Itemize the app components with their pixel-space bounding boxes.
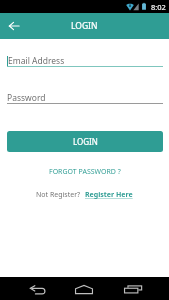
staticText: LOGIN: [73, 136, 98, 147]
button[interactable]: LOGIN: [7, 131, 163, 152]
button[interactable]: Register Here: [85, 190, 133, 200]
button[interactable]: Home: [68, 277, 100, 300]
button[interactable]: Back: [4, 16, 24, 36]
staticText: Password: [7, 92, 46, 104]
button[interactable]: Recents: [120, 277, 152, 300]
staticText: 8:02: [151, 2, 166, 12]
staticText: Email Address: [8, 55, 65, 67]
staticText: Not Register?: [36, 190, 81, 200]
button[interactable]: FORGOT PASSWORD ?: [49, 167, 121, 177]
button[interactable]: Back: [22, 277, 54, 300]
staticText: LOGIN: [71, 20, 98, 32]
